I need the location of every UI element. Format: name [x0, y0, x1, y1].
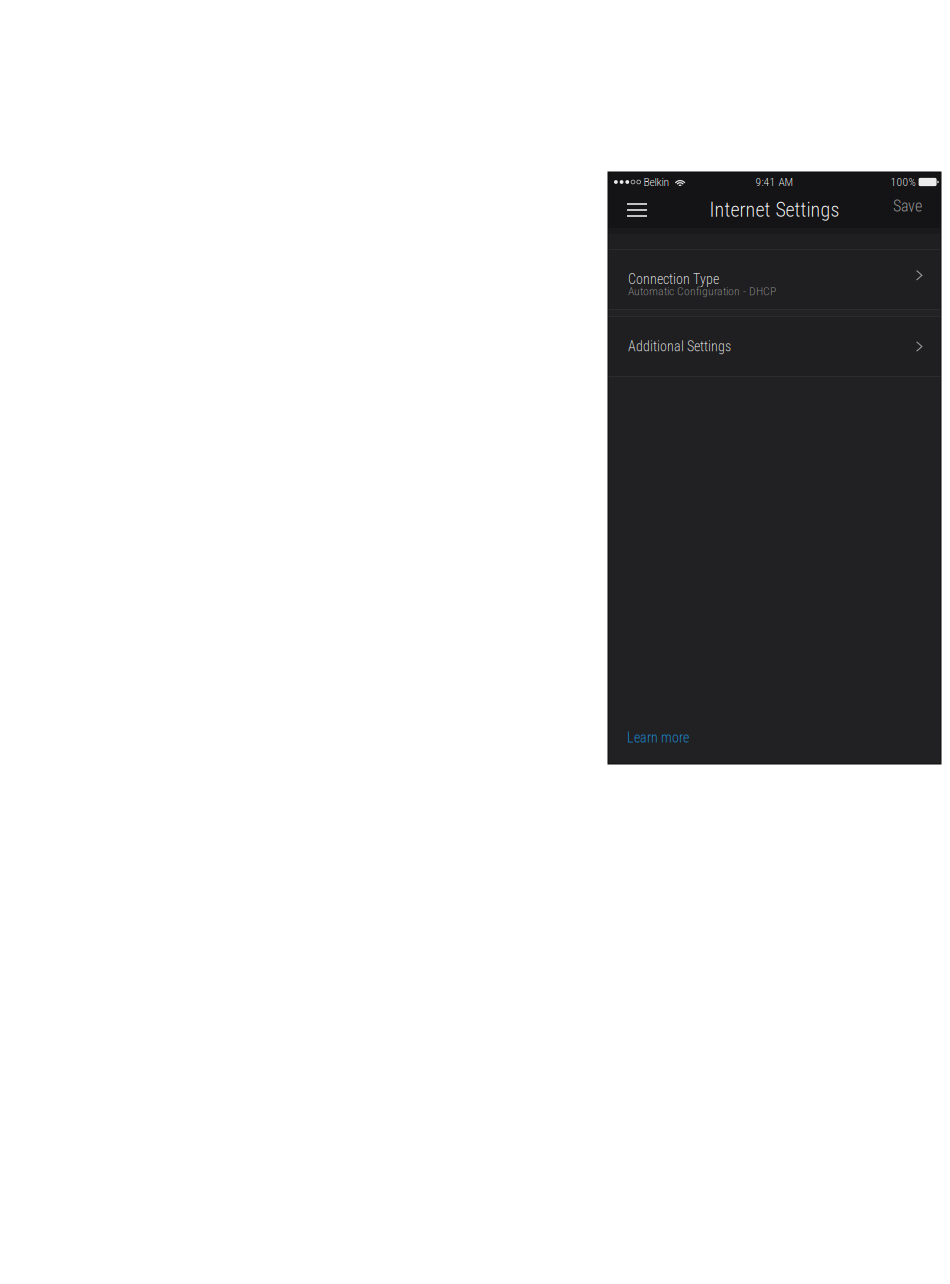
staticText: Save: [893, 197, 922, 215]
button[interactable]: Additional Settings: [608, 317, 941, 376]
staticText: 9:41 AM: [755, 175, 793, 189]
staticText: Learn more: [627, 730, 689, 746]
button[interactable]: Connection Type: [608, 250, 941, 309]
staticText: Internet Settings: [709, 198, 839, 222]
staticText: Automatic Configuration - DHCP: [628, 284, 776, 298]
staticText: Connection Type: [628, 271, 719, 287]
staticText: Additional Settings: [628, 338, 731, 355]
staticText: 100%: [891, 175, 916, 189]
button[interactable]: Save: [879, 192, 941, 228]
button[interactable]: Learn more: [608, 722, 703, 764]
staticText: Belkin: [644, 175, 670, 189]
button[interactable]: Menu: [608, 192, 661, 228]
